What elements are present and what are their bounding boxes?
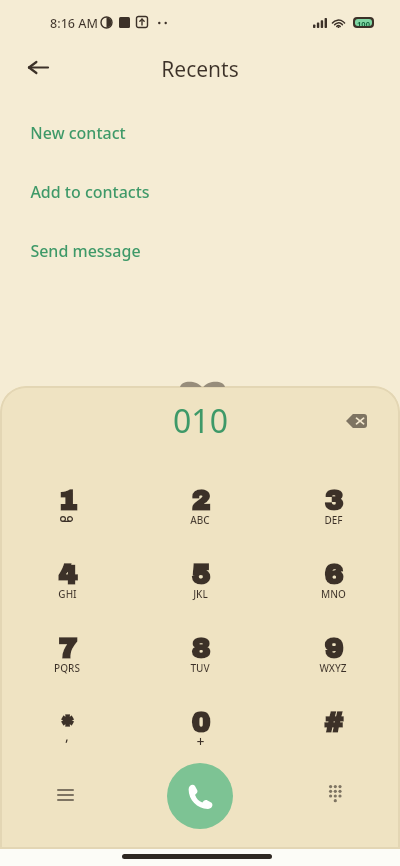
staticText: 4 — [58, 559, 77, 589]
staticText: 0 — [191, 707, 210, 737]
staticText: 6 — [324, 559, 343, 589]
staticText: WXYZ — [319, 661, 347, 675]
button[interactable]: 2 — [152, 472, 248, 540]
button[interactable]: 4 — [19, 546, 115, 614]
staticText: + — [196, 732, 205, 751]
staticText: PQRS — [54, 661, 80, 675]
staticText: Recents — [161, 55, 239, 84]
button[interactable]: Backspace — [338, 403, 374, 439]
staticText: 2 — [191, 485, 210, 515]
button[interactable]: 3 — [285, 472, 381, 540]
button[interactable]: Menu — [45, 775, 85, 815]
staticText: Add to contacts — [30, 181, 150, 203]
staticText: 100 — [357, 19, 370, 26]
staticText: DEF — [324, 513, 343, 527]
staticText: MNO — [321, 587, 346, 601]
button[interactable]: 7 — [19, 620, 115, 688]
staticText: * — [59, 710, 75, 740]
button[interactable]: Back — [17, 47, 58, 88]
staticText: GHI — [58, 587, 77, 601]
staticText: 1 — [58, 485, 77, 515]
staticText: TUV — [190, 661, 210, 675]
button[interactable]: 0 — [152, 694, 248, 762]
staticText: 7 — [58, 633, 77, 663]
staticText: ABC — [190, 513, 210, 527]
button[interactable]: New contact — [0, 107, 400, 159]
button[interactable]: 6 — [285, 546, 381, 614]
button[interactable]: 1 — [19, 472, 115, 540]
button[interactable]: # — [285, 694, 381, 762]
staticText: 9 — [324, 633, 343, 663]
staticText: JKL — [193, 587, 208, 601]
button[interactable]: Send message — [0, 225, 400, 277]
staticText: # — [324, 707, 343, 737]
staticText: 8:16 AM — [50, 15, 98, 32]
staticText: 5 — [191, 559, 210, 589]
button[interactable]: Add to contacts — [0, 166, 400, 218]
staticText: 010 — [173, 399, 228, 443]
staticText: 3 — [324, 485, 343, 515]
staticText: New contact — [30, 122, 126, 144]
button[interactable]: 8 — [152, 620, 248, 688]
button[interactable]: Dialpad — [315, 773, 355, 813]
button[interactable]: Call — [167, 763, 233, 829]
button[interactable]: 9 — [285, 620, 381, 688]
button[interactable]: 5 — [152, 546, 248, 614]
staticText: , — [65, 726, 69, 745]
button[interactable]: * — [19, 694, 115, 762]
staticText: 8 — [191, 633, 210, 663]
staticText: Send message — [30, 240, 141, 262]
